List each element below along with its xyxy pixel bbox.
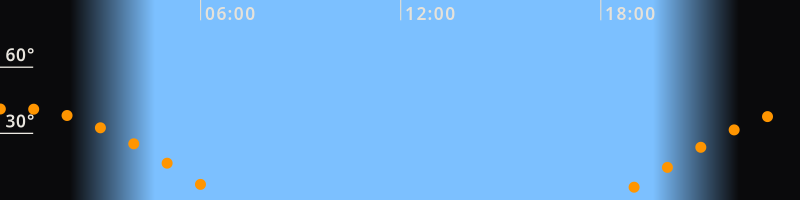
staticText: 0 [16, 109, 26, 132]
staticText: 0 [245, 2, 255, 25]
staticText: 0 [16, 43, 26, 66]
staticText: 3 [5, 109, 15, 132]
staticText: ° [27, 109, 34, 132]
staticText: 6 [5, 43, 15, 66]
staticText: 2 [416, 2, 426, 25]
staticText: 0 [445, 2, 455, 25]
staticText: 0 [205, 2, 215, 25]
staticText: : [428, 2, 433, 25]
staticText: ° [27, 43, 34, 66]
staticText: 1 [405, 2, 415, 25]
staticText: 8 [616, 2, 626, 25]
staticText: 0 [634, 2, 644, 25]
staticText: 6 [216, 2, 226, 25]
staticText: : [228, 2, 233, 25]
staticText: 1 [605, 2, 615, 25]
staticText: 0 [645, 2, 655, 25]
staticText: 0 [234, 2, 244, 25]
staticText: 0 [434, 2, 444, 25]
staticText: : [628, 2, 633, 25]
